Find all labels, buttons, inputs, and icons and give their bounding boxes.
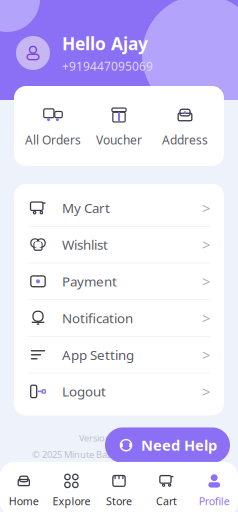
button[interactable]: My Cart bbox=[14, 190, 224, 227]
staticText: Version v1.00 (124) bbox=[79, 432, 159, 444]
staticText: > bbox=[202, 308, 210, 328]
staticText: App Setting bbox=[62, 346, 134, 364]
staticText: > bbox=[202, 272, 210, 291]
button[interactable]: Notification bbox=[14, 300, 224, 337]
staticText: Store bbox=[106, 494, 132, 508]
staticText: Logout bbox=[62, 383, 106, 400]
button[interactable]: Profile bbox=[190, 472, 238, 508]
staticText: Explore bbox=[52, 494, 90, 508]
staticText: Need Help bbox=[141, 435, 217, 455]
button[interactable]: All Orders bbox=[20, 100, 86, 152]
staticText: +919447095069 bbox=[62, 58, 153, 74]
button[interactable]: Home bbox=[0, 472, 48, 508]
staticText: Home bbox=[9, 494, 39, 508]
button[interactable]: Voucher bbox=[86, 100, 152, 152]
button[interactable]: Cart bbox=[143, 472, 190, 508]
staticText: © 2025 Minute Bazaar All rights reserved bbox=[32, 448, 206, 461]
staticText: Address bbox=[162, 132, 208, 148]
button[interactable]: App Setting bbox=[14, 337, 224, 373]
button[interactable]: Need Help bbox=[105, 427, 230, 463]
staticText: > bbox=[202, 345, 210, 364]
button[interactable]: Logout bbox=[14, 373, 224, 409]
staticText: Voucher bbox=[96, 132, 142, 148]
staticText: Payment bbox=[62, 272, 117, 290]
button[interactable]: Explore bbox=[48, 472, 95, 508]
button[interactable]: Address bbox=[152, 100, 218, 152]
staticText: > bbox=[202, 382, 210, 401]
staticText: > bbox=[202, 198, 210, 218]
staticText: My Cart bbox=[62, 199, 110, 217]
staticText: Cart bbox=[156, 494, 177, 508]
staticText: > bbox=[202, 235, 210, 254]
button[interactable]: Payment bbox=[14, 263, 224, 300]
staticText: Profile bbox=[199, 494, 230, 508]
staticText: Notification bbox=[62, 309, 133, 327]
button[interactable]: Wishlist bbox=[14, 227, 224, 263]
staticText: Wishlist bbox=[62, 236, 108, 253]
button[interactable]: Store bbox=[95, 472, 143, 508]
staticText: All Orders bbox=[25, 132, 81, 148]
staticText: Hello Ajay bbox=[62, 32, 148, 55]
